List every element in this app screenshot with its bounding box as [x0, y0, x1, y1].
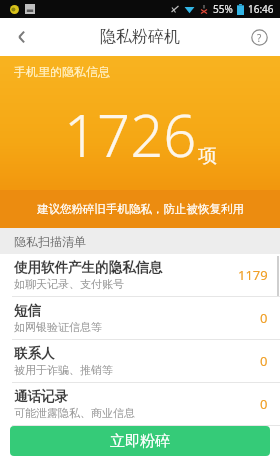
staticText: ? — [257, 31, 262, 45]
staticText: 如网银验证信息等 — [14, 320, 102, 334]
staticText: 隐私粉碎机 — [100, 27, 180, 47]
staticText: 55% — [213, 2, 233, 16]
staticText: 被用于诈骗、推销等 — [14, 363, 113, 377]
staticText: 0 — [260, 395, 268, 413]
staticText: 手机里的隐私信息 — [14, 64, 110, 79]
staticText: 立即粉碎 — [110, 432, 170, 451]
staticText: 建议您粉碎旧手机隐私，防止被恢复利用 — [37, 202, 244, 216]
staticText: 可能泄露隐私、商业信息 — [14, 406, 135, 420]
staticText: 0 — [260, 309, 268, 327]
button[interactable]: 联系人 — [0, 340, 280, 382]
button[interactable]: 短信 — [0, 297, 280, 339]
button[interactable]: 通话记录 — [0, 383, 280, 425]
staticText: 联系人 — [14, 345, 55, 362]
button[interactable]: Back — [0, 18, 44, 56]
staticText: 0 — [260, 352, 268, 370]
staticText: 通话记录 — [14, 388, 68, 405]
staticText: 隐私扫描清单 — [14, 234, 86, 249]
staticText: 项 — [198, 144, 217, 168]
staticText: 使用软件产生的隐私信息 — [14, 259, 163, 276]
staticText: 如聊天记录、支付账号 — [14, 277, 124, 291]
staticText: 短信 — [14, 302, 41, 319]
button[interactable]: 使用软件产生的隐私信息 — [0, 254, 280, 296]
button[interactable]: 立即粉碎 — [10, 426, 270, 456]
staticText: 16:46 — [248, 2, 274, 16]
staticText: 1179 — [238, 266, 268, 284]
staticText: 1726 — [64, 95, 197, 174]
button[interactable]: Help — [238, 18, 280, 56]
